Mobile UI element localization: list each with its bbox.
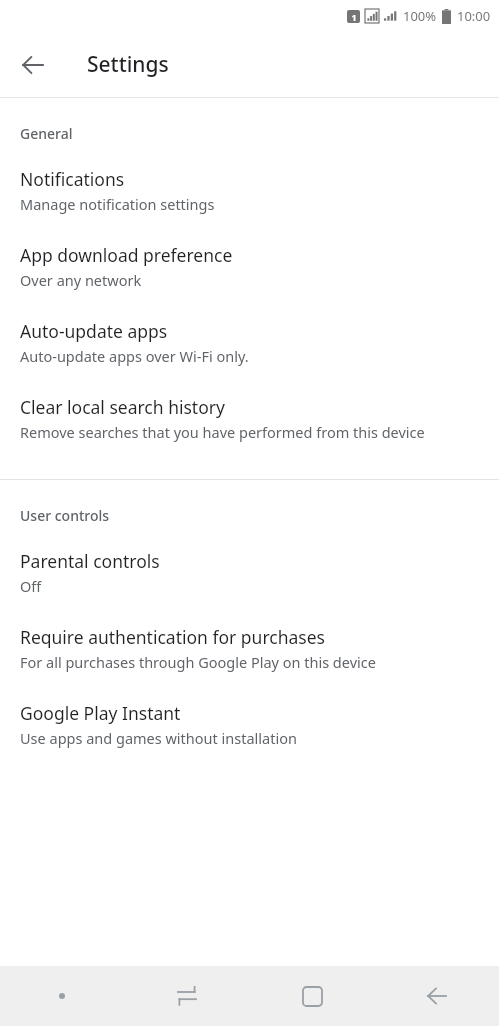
button[interactable]: Auto-update apps [0,319,499,366]
button[interactable]: Clear local search history [0,395,499,442]
staticText: General [20,124,73,143]
staticText: 1 [351,11,357,23]
button[interactable]: App download preference [0,243,499,290]
staticText: Google Play Instant [20,701,181,725]
staticText: Use apps and games without installation [20,728,297,748]
staticText: 10:00 [457,7,491,25]
button[interactable]: Notifications [0,167,499,214]
staticText: User controls [20,506,110,525]
staticText: Parental controls [20,549,160,573]
staticText: Over any network [20,270,142,290]
button[interactable]: Google Play Instant [0,701,499,748]
staticText: App download preference [20,243,233,267]
staticText: Require authentication for purchases [20,625,325,649]
staticText: 100% [403,7,437,25]
button[interactable]: Recents [163,972,211,1020]
staticText: Manage notification settings [20,194,215,214]
staticText: For all purchases through Google Play on… [20,652,376,672]
staticText: Notifications [20,167,125,191]
staticText: Auto-update apps [20,319,168,343]
button[interactable]: Menu indicator [38,972,86,1020]
button[interactable]: Home [288,972,336,1020]
staticText: Remove searches that you have performed … [20,422,425,442]
button[interactable]: Back [10,42,56,88]
staticText: Off [20,576,42,596]
button[interactable]: Require authentication for purchases [0,625,499,672]
staticText: Auto-update apps over Wi-Fi only. [20,346,249,366]
staticText: Settings [87,50,169,79]
staticText: Clear local search history [20,395,225,419]
button[interactable]: Back [413,972,461,1020]
button[interactable]: Parental controls [0,549,499,596]
